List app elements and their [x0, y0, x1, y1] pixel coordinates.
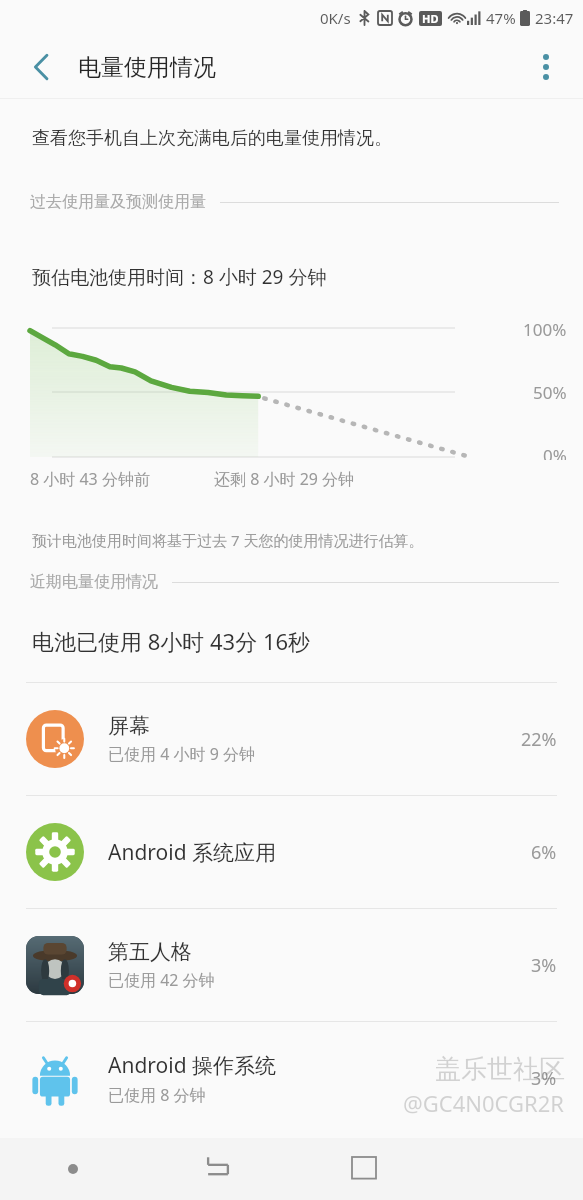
staticText: 0%: [543, 444, 567, 460]
staticText: 还剩 8 小时 29 分钟: [214, 468, 355, 490]
staticText: 过去使用量及预测使用量: [30, 192, 206, 212]
staticText: 6%: [531, 840, 557, 865]
staticText: 已使用 42 分钟: [108, 969, 215, 991]
button[interactable]: Back: [18, 44, 64, 90]
staticText: 3%: [531, 953, 557, 978]
staticText: 电量使用情况: [78, 53, 216, 82]
staticText: Android 操作系统: [108, 1051, 277, 1080]
staticText: 预计电池使用时间将基于过去 7 天您的使用情况进行估算。: [32, 530, 424, 550]
staticText: 3%: [531, 1066, 557, 1091]
staticText: 8 小时 43 分钟前: [30, 468, 150, 490]
button[interactable]: Menu: [0, 1138, 145, 1200]
button[interactable]: More options: [523, 44, 569, 90]
staticText: 盖乐世社区: [435, 1053, 565, 1086]
button[interactable]: 屏幕: [0, 683, 583, 795]
staticText: 0K/s: [320, 8, 351, 28]
staticText: 屏幕: [108, 713, 150, 739]
staticText: 100%: [523, 318, 567, 341]
button[interactable]: Back: [145, 1138, 291, 1200]
staticText: @GC4N0CGR2R: [403, 1088, 565, 1118]
staticText: Android 系统应用: [108, 838, 277, 867]
staticText: 50%: [533, 381, 567, 404]
button[interactable]: Android 操作系统: [0, 1022, 583, 1134]
button[interactable]: Android 系统应用: [0, 796, 583, 908]
staticText: 已使用 8 分钟: [108, 1084, 206, 1106]
staticText: 近期电量使用情况: [30, 572, 158, 592]
staticText: 查看您手机自上次充满电后的电量使用情况。: [32, 127, 392, 150]
staticText: 第五人格: [108, 939, 192, 965]
staticText: 电池已使用 8小时 43分 16秒: [32, 626, 311, 656]
button[interactable]: 第五人格: [0, 909, 583, 1021]
staticText: HD: [422, 11, 439, 26]
button[interactable]: Recent apps: [291, 1138, 437, 1200]
staticText: 已使用 4 小时 9 分钟: [108, 743, 255, 765]
staticText: 预估电池使用时间：8 小时 29 分钟: [32, 264, 327, 290]
staticText: 23:47: [535, 8, 574, 28]
staticText: 47%: [486, 8, 516, 28]
staticText: 22%: [521, 727, 557, 752]
